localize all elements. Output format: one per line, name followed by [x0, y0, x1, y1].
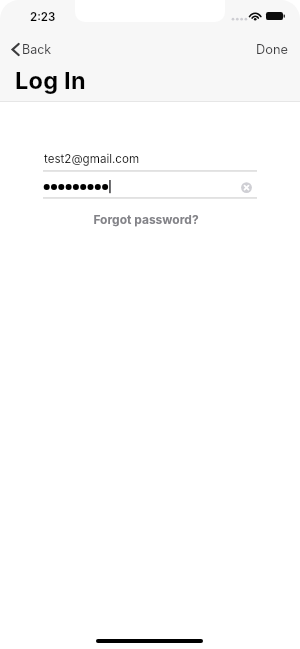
staticText: 2:23 — [30, 10, 56, 24]
button[interactable]: Forgot password? — [87, 209, 205, 230]
staticText: Log In — [15, 66, 86, 94]
staticText: Forgot password? — [93, 212, 199, 227]
button[interactable]: Clear text — [239, 180, 254, 195]
staticText: Back — [22, 42, 52, 57]
staticText: Done — [256, 42, 288, 57]
button[interactable]: Done — [244, 39, 300, 60]
button[interactable]: Back — [5, 39, 60, 60]
staticText: test2@gmail.com — [44, 152, 140, 166]
